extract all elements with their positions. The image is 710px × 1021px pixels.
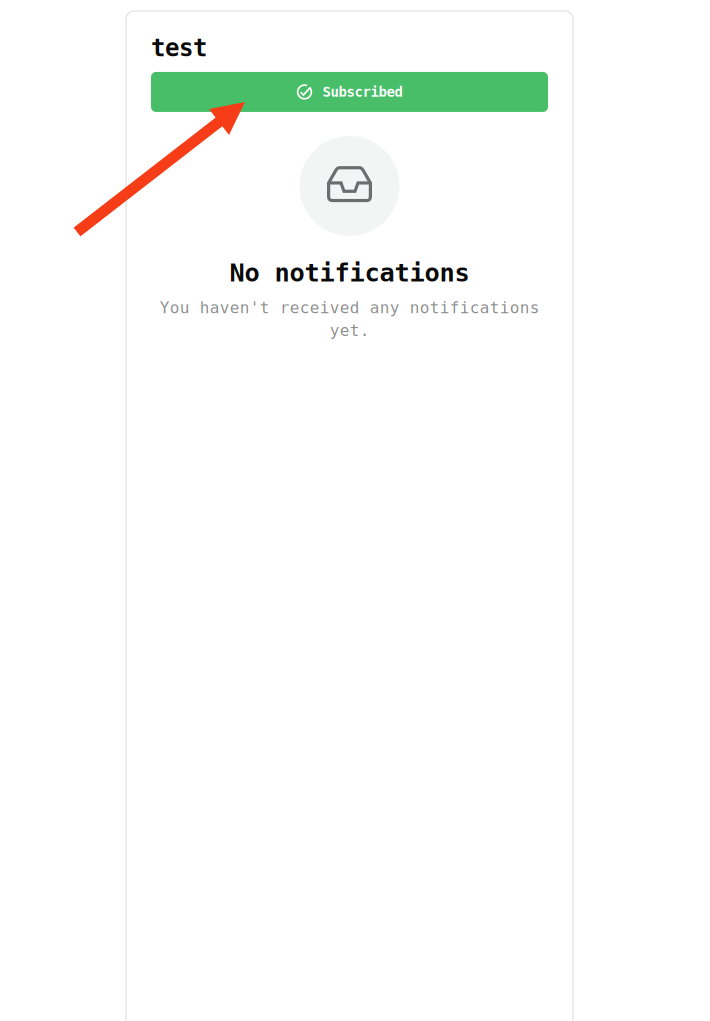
staticText: You haven't received any notifications y… (159, 298, 539, 340)
staticText: test (151, 34, 207, 62)
staticText: Subscribed (322, 84, 402, 100)
staticText: No notifications (229, 258, 469, 287)
button[interactable]: Subscribed (151, 72, 548, 112)
